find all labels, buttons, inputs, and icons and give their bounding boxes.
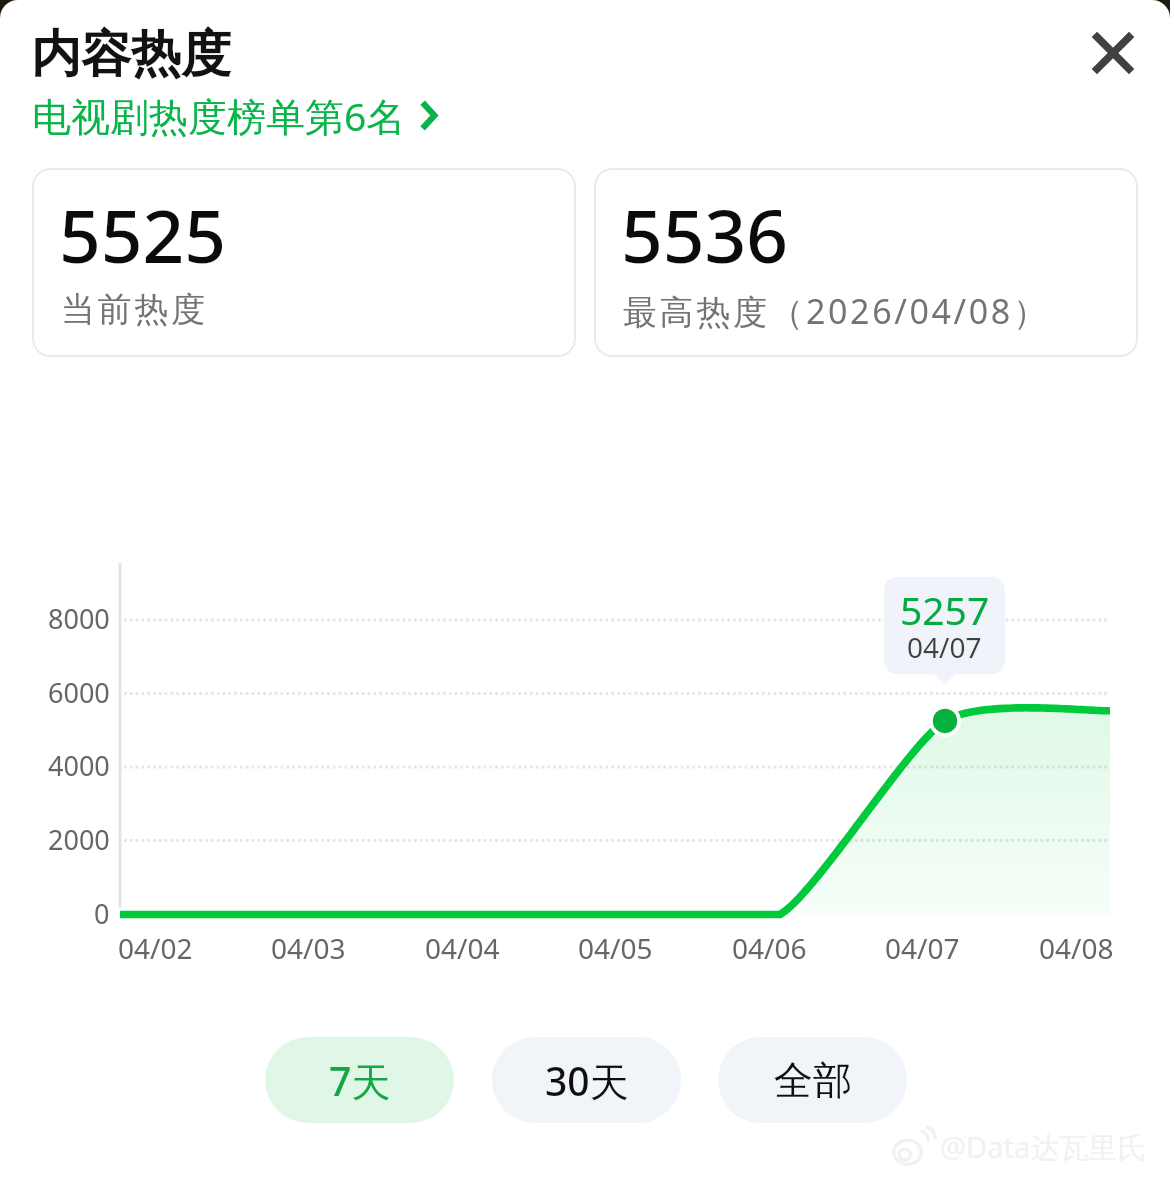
staticText: 内容热度: [31, 23, 231, 86]
button[interactable]: 7天: [265, 1037, 454, 1123]
staticText: 6000: [48, 674, 110, 711]
staticText: 04/06: [732, 929, 807, 967]
staticText: @Data达瓦里氏: [940, 1127, 1147, 1167]
staticText: 04/05: [578, 929, 653, 967]
button[interactable]: Close: [1071, 11, 1155, 95]
button[interactable]: 电视剧热度榜单第6名: [32, 89, 437, 142]
staticText: 7天: [329, 1054, 391, 1107]
staticText: 4000: [48, 747, 110, 784]
staticText: 04/07: [907, 628, 982, 666]
staticText: 04/08: [1039, 929, 1114, 967]
staticText: 5525: [59, 185, 227, 284]
staticText: 2000: [48, 821, 110, 858]
button[interactable]: 5536: [594, 168, 1138, 357]
staticText: 0: [94, 895, 110, 932]
staticText: 04/07: [885, 929, 960, 967]
button[interactable]: 30天: [492, 1037, 681, 1123]
staticText: 全部: [774, 1056, 852, 1105]
staticText: 04/04: [425, 929, 500, 967]
staticText: 30天: [545, 1054, 629, 1107]
button[interactable]: 全部: [718, 1037, 907, 1123]
staticText: 电视剧热度榜单第6名: [32, 89, 406, 142]
staticText: 5536: [621, 185, 789, 284]
staticText: 最高热度（2026/04/08）: [623, 288, 1050, 334]
staticText: 04/02: [118, 929, 193, 967]
staticText: 8000: [48, 600, 110, 637]
staticText: 当前热度: [61, 288, 208, 331]
button[interactable]: 5525: [32, 168, 576, 357]
staticText: 04/03: [271, 929, 346, 967]
staticText: 5257: [900, 583, 990, 636]
